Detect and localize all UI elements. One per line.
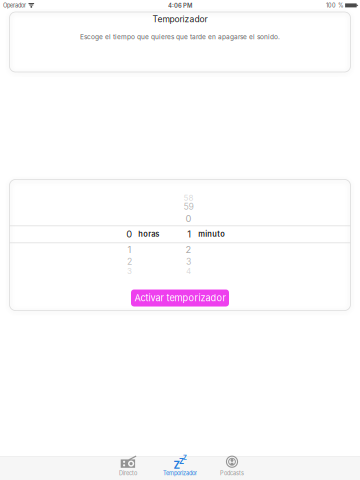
staticText: Directo bbox=[119, 470, 137, 476]
staticText: 0 bbox=[185, 213, 191, 224]
staticText: 3 bbox=[186, 256, 191, 267]
staticText: 59 bbox=[183, 201, 193, 212]
staticText: Operador bbox=[3, 2, 26, 9]
staticText: Escoge el tiempo que quieres que tarde e… bbox=[80, 33, 280, 41]
button[interactable]: Directo bbox=[102, 456, 154, 480]
button[interactable]: Activar temporizador bbox=[131, 289, 229, 306]
button[interactable]: Podcasts bbox=[206, 456, 258, 480]
staticText: 2 bbox=[127, 256, 132, 267]
staticText: horas bbox=[138, 229, 159, 238]
staticText: 100 % bbox=[326, 2, 343, 9]
staticText: 1 bbox=[127, 244, 131, 255]
staticText: Temporizador bbox=[163, 470, 197, 476]
staticText: Podcasts bbox=[220, 470, 244, 476]
staticText: Z bbox=[179, 456, 184, 466]
staticText: 58 bbox=[183, 193, 193, 203]
staticText: minuto bbox=[198, 229, 225, 238]
staticText: 4:06 PM bbox=[168, 2, 192, 9]
staticText: 3 bbox=[127, 266, 132, 276]
staticText: Z bbox=[173, 459, 180, 471]
button[interactable]: Z bbox=[154, 456, 206, 480]
staticText: 4 bbox=[186, 266, 191, 276]
staticText: 0 bbox=[126, 228, 132, 240]
staticText: Z bbox=[183, 454, 187, 461]
staticText: 2 bbox=[185, 244, 191, 255]
staticText: 1 bbox=[187, 228, 191, 240]
staticText: Activar temporizador bbox=[134, 292, 225, 303]
staticText: Temporizador bbox=[152, 14, 207, 24]
